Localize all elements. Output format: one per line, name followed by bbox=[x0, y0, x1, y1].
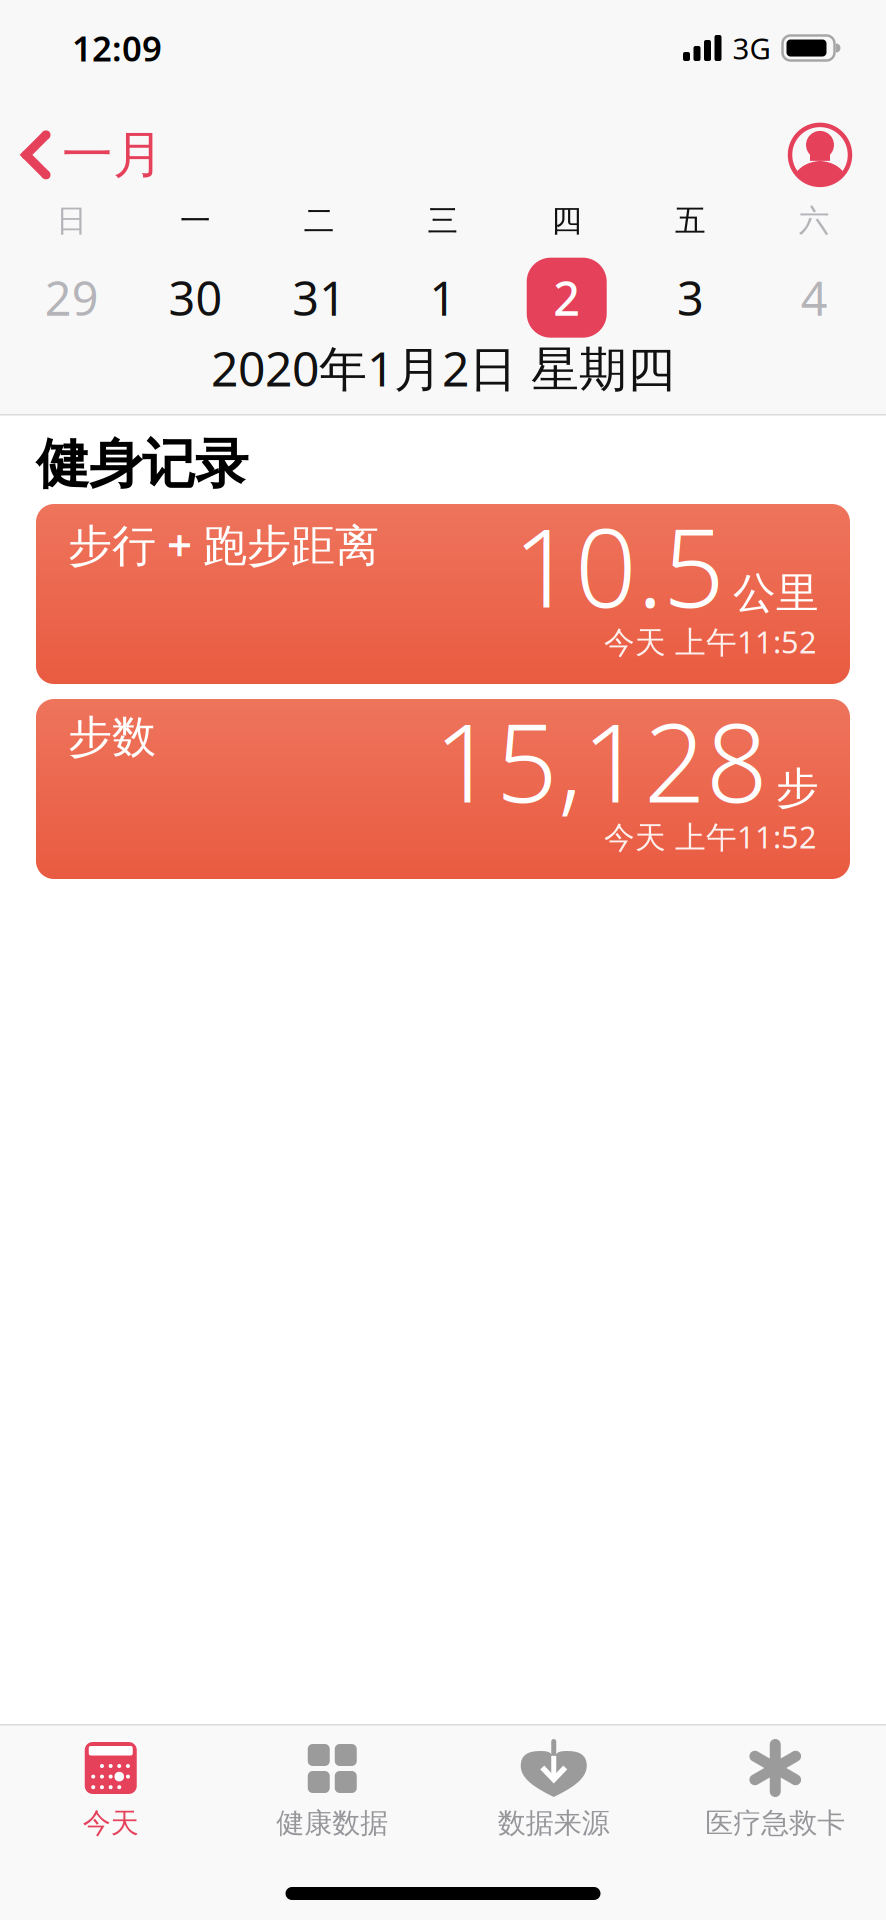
staticText: 今天 bbox=[83, 1806, 139, 1840]
staticText: 1 bbox=[429, 267, 456, 329]
staticText: 五 bbox=[675, 202, 706, 240]
staticText: 数据来源 bbox=[498, 1806, 610, 1840]
button[interactable]: 健康数据 bbox=[221, 1742, 443, 1840]
button[interactable]: 今天 bbox=[0, 1742, 221, 1840]
staticText: 健康数据 bbox=[276, 1806, 388, 1840]
staticText: 二 bbox=[304, 202, 335, 240]
staticText: 29 bbox=[45, 267, 99, 329]
staticText: 四 bbox=[551, 202, 582, 240]
button[interactable]: 个人资料 bbox=[790, 125, 850, 185]
staticText: 日 bbox=[56, 202, 87, 240]
staticText: 30 bbox=[169, 267, 223, 329]
staticText: 2020年1月2日 星期四 bbox=[211, 336, 675, 400]
button[interactable]: 10.5 bbox=[0, 504, 886, 684]
button[interactable]: 数据来源 bbox=[443, 1742, 664, 1840]
staticText: 一 bbox=[180, 202, 211, 240]
button[interactable]: 15,128 bbox=[0, 699, 886, 879]
button[interactable]: 31 bbox=[257, 258, 381, 338]
staticText: 15,128 bbox=[434, 689, 768, 832]
staticText: 医疗急救卡 bbox=[705, 1806, 845, 1840]
staticText: 10.5 bbox=[513, 494, 725, 637]
staticText: 今天 上午11:52 bbox=[604, 621, 817, 662]
staticText: 2 bbox=[553, 267, 580, 329]
staticText: 步数 bbox=[68, 710, 156, 764]
staticText: 六 bbox=[799, 202, 830, 240]
button[interactable]: 30 bbox=[134, 258, 257, 338]
staticText: 今天 上午11:52 bbox=[604, 816, 817, 857]
button[interactable]: 2 bbox=[505, 258, 629, 338]
staticText: 3G bbox=[732, 28, 770, 67]
button[interactable]: 3 bbox=[629, 258, 752, 338]
button[interactable]: 29 bbox=[10, 258, 134, 338]
button[interactable]: 1 bbox=[381, 258, 505, 338]
staticText: 三 bbox=[427, 202, 458, 240]
staticText: 31 bbox=[292, 267, 346, 329]
button[interactable]: 医疗急救卡 bbox=[664, 1742, 886, 1840]
staticText: 一月 bbox=[62, 124, 164, 186]
button[interactable]: 4 bbox=[752, 258, 876, 338]
staticText: 4 bbox=[801, 267, 828, 329]
staticText: 3 bbox=[677, 267, 704, 329]
staticText: 公里 bbox=[733, 567, 819, 620]
staticText: 12:09 bbox=[72, 25, 162, 71]
button[interactable]: 一月 bbox=[22, 124, 164, 186]
staticText: 健身记录 bbox=[36, 431, 248, 497]
staticText: 步 bbox=[776, 762, 819, 815]
staticText: 步行 + 跑步距离 bbox=[68, 515, 379, 573]
